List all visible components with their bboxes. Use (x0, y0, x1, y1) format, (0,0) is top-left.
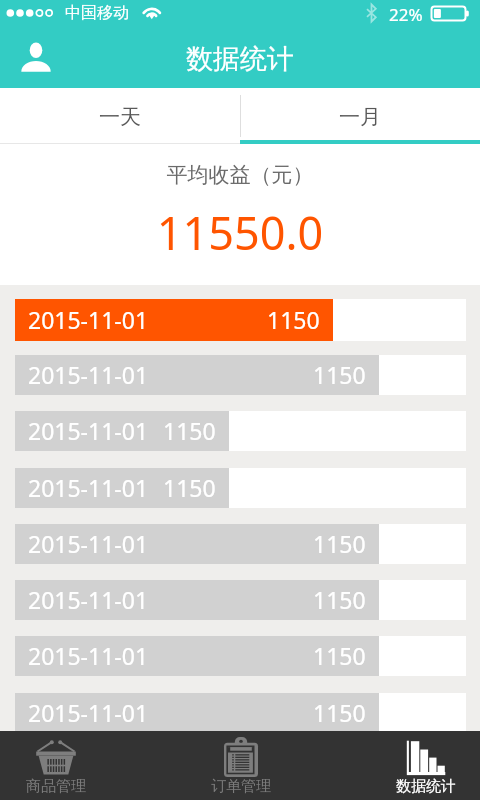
staticText: 订单管理 (211, 777, 271, 796)
staticText: 数据统计 (186, 42, 294, 76)
staticText: 2015-11-01 (28, 640, 149, 671)
button[interactable]: 2015-11-01 (15, 636, 466, 676)
staticText: 1150 (163, 472, 216, 503)
button[interactable]: Profile (9, 30, 63, 84)
button[interactable]: 2015-11-01 (15, 468, 466, 508)
staticText: 平均收益（元） (0, 162, 480, 188)
staticText: 一月 (339, 104, 381, 130)
staticText: 商品管理 (26, 777, 86, 796)
button[interactable]: 一月 (240, 88, 480, 144)
button[interactable]: 一天 (0, 88, 240, 144)
staticText: 11550.0 (0, 202, 480, 263)
staticText: 中国移动 (65, 3, 129, 23)
staticText: 2015-11-01 (28, 415, 149, 446)
button[interactable]: 2015-11-01 (15, 524, 466, 564)
staticText: 1150 (267, 304, 320, 335)
staticText: 2015-11-01 (28, 584, 149, 615)
staticText: 1150 (313, 584, 366, 615)
staticText: 2015-11-01 (28, 472, 149, 503)
staticText: 一天 (99, 104, 141, 130)
button[interactable]: Products (25, 731, 87, 800)
button[interactable]: Orders (210, 731, 272, 800)
staticText: 1150 (313, 640, 366, 671)
button[interactable]: Statistics (395, 731, 457, 800)
staticText: 2015-11-01 (28, 528, 149, 559)
button[interactable]: 2015-11-01 (15, 693, 466, 733)
staticText: 1150 (313, 359, 366, 390)
staticText: 2015-11-01 (28, 304, 149, 335)
staticText: 数据统计 (396, 777, 456, 796)
staticText: 2015-11-01 (28, 697, 149, 728)
button[interactable]: 2015-11-01 (15, 580, 466, 620)
button[interactable]: 2015-11-01 (15, 411, 466, 451)
staticText: 1150 (313, 697, 366, 728)
staticText: 1150 (313, 528, 366, 559)
staticText: 2015-11-01 (28, 359, 149, 390)
button[interactable]: 2015-11-01 (15, 355, 466, 395)
button[interactable]: 2015-11-01 (15, 299, 466, 341)
staticText: 22% (389, 3, 423, 26)
staticText: 1150 (163, 415, 216, 446)
